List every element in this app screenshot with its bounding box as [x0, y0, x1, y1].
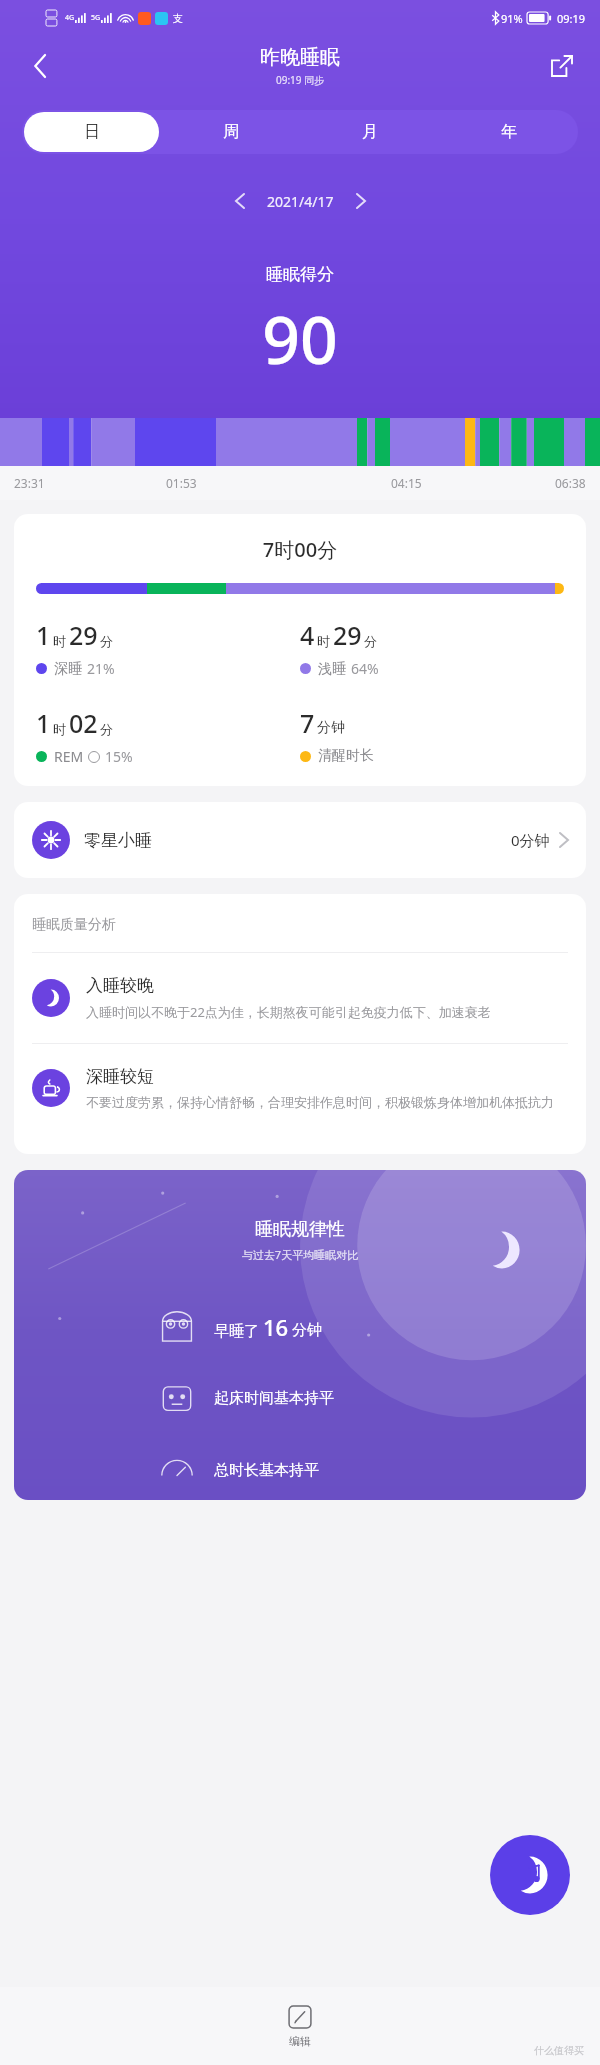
button[interactable]: Share [540, 44, 584, 88]
staticText: 02 [69, 706, 98, 740]
staticText: 支 [173, 12, 183, 25]
staticText: REM [54, 747, 84, 766]
staticText: 年 [501, 122, 517, 142]
staticText: 1 [36, 706, 51, 740]
staticText: 09:19 [557, 11, 586, 26]
staticText: 91% [501, 11, 523, 26]
button[interactable]: 周 [161, 110, 300, 154]
staticText: 起床时间基本持平 [214, 1389, 334, 1408]
staticText: 29 [333, 618, 362, 652]
staticText: 编辑 [289, 2034, 311, 2048]
button[interactable]: Back [18, 44, 62, 88]
staticText: 分 [100, 633, 113, 649]
staticText: 时 [53, 721, 66, 737]
staticText: 21% [87, 659, 115, 678]
button[interactable]: Previous day [223, 184, 257, 218]
button[interactable]: 编辑 [281, 1998, 319, 2054]
button[interactable]: 7时00分 [14, 514, 586, 786]
staticText: 入睡时间以不晚于22点为佳，长期熬夜可能引起免疫力低下、加速衰老 [86, 1003, 491, 1021]
staticText: 29 [69, 618, 98, 652]
staticText: 入睡较晚 [86, 975, 154, 996]
staticText: 与过去7天平均睡眠对比 [14, 1247, 586, 1262]
button[interactable]: 零星小睡 [14, 802, 586, 878]
staticText: 4G [65, 13, 75, 23]
staticText: 深睡较短 [86, 1066, 154, 1087]
staticText: 0分钟 [511, 830, 550, 850]
button[interactable]: 入睡较晚 [32, 953, 568, 1043]
staticText: 分 [364, 633, 377, 649]
staticText: 1 [36, 618, 51, 652]
staticText: 周 [223, 122, 239, 142]
button[interactable]: 睡眠规律性 [14, 1170, 586, 1500]
staticText: 时 [317, 633, 330, 649]
staticText: 90 [0, 293, 600, 383]
staticText: 7时00分 [14, 536, 586, 563]
staticText: 09:19 同步 [276, 73, 325, 87]
button[interactable]: 月 [300, 110, 439, 154]
button[interactable]: 日 [24, 112, 159, 152]
button[interactable]: Next day [344, 184, 378, 218]
staticText: 深睡 [54, 660, 82, 678]
staticText: 浅睡 [318, 660, 346, 678]
staticText: 01:53 [166, 475, 197, 491]
staticText: 月 [362, 122, 378, 142]
staticText: 06:38 [555, 475, 586, 491]
staticText: 04:15 [391, 475, 422, 491]
button[interactable]: 年 [439, 110, 578, 154]
staticText: 早睡了 [214, 1320, 263, 1340]
staticText: 16 [263, 1312, 289, 1342]
staticText: 4 [300, 618, 315, 652]
staticText: 零星小睡 [84, 830, 152, 851]
staticText: 昨晚睡眠 [260, 45, 340, 70]
staticText: 64% [351, 659, 379, 678]
staticText: 睡眠规律性 [14, 1218, 586, 1241]
staticText: 睡眠质量分析 [32, 916, 116, 934]
staticText: 清醒时长 [318, 747, 374, 765]
staticText: 15% [105, 747, 133, 766]
staticText: 日 [84, 122, 100, 142]
staticText: 什么值得买 [534, 2044, 584, 2057]
staticText: 睡眠得分 [0, 264, 600, 285]
staticText: 时 [53, 633, 66, 649]
staticText: 总时长基本持平 [214, 1461, 319, 1480]
button[interactable]: Music [490, 1835, 570, 1915]
staticText: 23:31 [14, 475, 45, 491]
button[interactable]: 深睡较短 [32, 1044, 568, 1132]
staticText: 2021/4/17 [267, 192, 334, 211]
staticText: 分钟 [317, 719, 345, 737]
staticText: 7 [300, 706, 315, 740]
staticText: 分 [100, 721, 113, 737]
staticText: 5G [91, 13, 101, 23]
staticText: 不要过度劳累，保持心情舒畅，合理安排作息时间，积极锻炼身体增加机体抵抗力 [86, 1094, 554, 1110]
staticText: 分钟 [292, 1321, 322, 1340]
